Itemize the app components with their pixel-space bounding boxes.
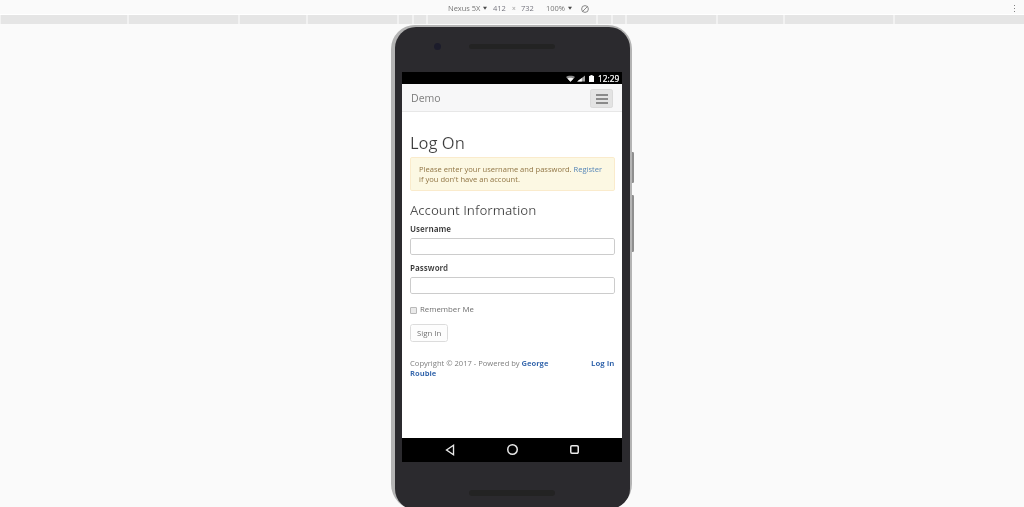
button[interactable]: George Roubie [512,358,552,378]
staticText: × [512,4,516,13]
staticText: Copyright © 2017 - Powered by George Rou… [410,358,550,378]
button[interactable]: Nexus 5X [448,3,487,13]
button[interactable]: Demo [402,84,450,112]
staticText: Log On [410,131,465,153]
staticText: Demo [411,91,441,105]
button[interactable]: Remember Me [410,304,474,315]
staticText: Account Information [410,201,537,219]
button[interactable]: Toggle navigation menu [590,89,613,108]
staticText: 412 [493,3,506,13]
staticText: 100% [546,3,566,13]
button[interactable]: Log In [591,358,615,369]
staticText: 12:29 [598,73,620,84]
button[interactable]: Home [500,438,524,461]
button[interactable]: Recent apps [562,438,586,461]
staticText: Remember Me [420,304,474,315]
button[interactable]: Sign In [410,324,448,342]
staticText: Log In [591,358,615,369]
button[interactable]: Register [575,164,608,173]
button[interactable]: More options [1012,4,1017,13]
staticText: Please enter your username and password.… [419,164,608,185]
button[interactable] [410,238,615,255]
button[interactable]: Back [438,438,462,461]
staticText: 732 [521,3,534,13]
staticText: Nexus 5X [448,3,481,13]
staticText: Username [410,223,452,234]
staticText: Password [410,262,449,273]
staticText: Sign In [417,328,442,339]
button[interactable]: Rotate / disable [579,3,590,14]
button[interactable]: 100% [546,3,572,13]
button[interactable] [410,277,615,294]
